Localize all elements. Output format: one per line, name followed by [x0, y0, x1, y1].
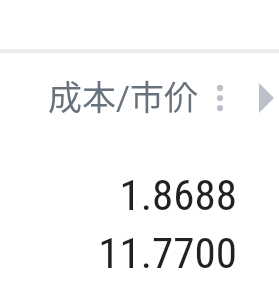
- button[interactable]: More options: [206, 76, 234, 120]
- staticText: 11.7700: [98, 228, 237, 278]
- staticText: 成本/市价: [48, 71, 199, 117]
- staticText: 1.8688: [119, 170, 237, 220]
- button[interactable]: Expand: [251, 76, 279, 120]
- button[interactable]: 成本/市价: [48, 71, 199, 117]
